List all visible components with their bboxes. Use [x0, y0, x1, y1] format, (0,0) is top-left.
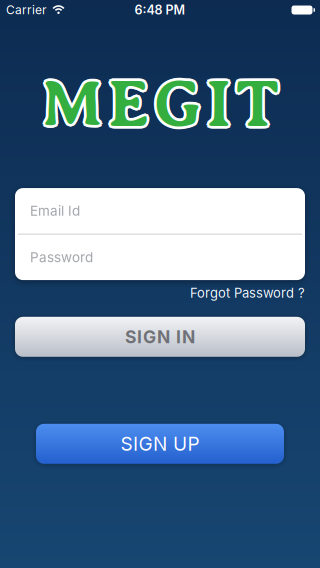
staticText: MEGIT: [43, 65, 281, 139]
staticText: Password: [30, 249, 93, 265]
staticText: MEGIT: [39, 65, 277, 139]
staticText: Forgot Password ?: [190, 285, 305, 301]
staticText: Carrier: [6, 3, 47, 17]
staticText: MEGIT: [38, 67, 276, 141]
staticText: MEGIT: [39, 69, 277, 143]
button[interactable]: Forgot Password ?: [0, 285, 320, 301]
staticText: SIGN UP: [120, 432, 199, 455]
button[interactable]: SIGN IN: [15, 317, 305, 357]
staticText: MEGIT: [44, 67, 282, 141]
staticText: MEGIT: [41, 67, 279, 141]
staticText: MEGIT: [41, 70, 279, 144]
staticText: Email Id: [30, 203, 80, 219]
staticText: 6:48 PM: [134, 2, 185, 17]
staticText: MEGIT: [41, 64, 279, 138]
staticText: MEGIT: [43, 69, 281, 143]
button[interactable]: Email Id: [15, 188, 305, 234]
button[interactable]: Password: [15, 235, 305, 280]
staticText: SIGN IN: [125, 326, 195, 347]
button[interactable]: SIGN UP: [36, 424, 284, 464]
